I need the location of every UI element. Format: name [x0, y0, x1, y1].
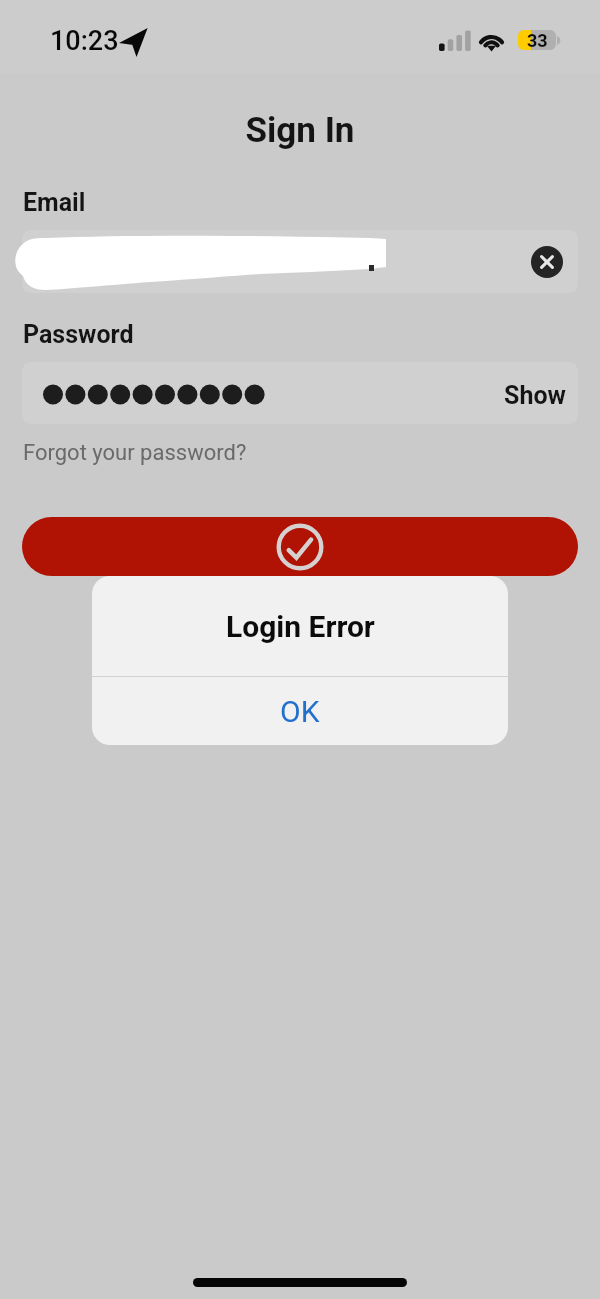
button[interactable]: Show [504, 374, 576, 416]
staticText: Show [504, 381, 566, 410]
button[interactable]: OK [92, 677, 508, 745]
staticText: OK [280, 694, 320, 729]
staticText: Password [23, 320, 134, 349]
button[interactable] [22, 362, 578, 424]
button[interactable]: Sign in [22, 517, 578, 576]
staticText: Login Error [226, 609, 375, 644]
button[interactable]: Forgot your password? [23, 440, 247, 466]
staticText: 33 [527, 30, 548, 50]
staticText: Sign In [0, 110, 600, 151]
staticText: Forgot your password? [23, 440, 247, 466]
button[interactable]: Clear email [531, 246, 563, 278]
staticText: 10:23 [50, 25, 119, 57]
staticText: Email [23, 188, 86, 217]
button[interactable] [22, 230, 578, 293]
